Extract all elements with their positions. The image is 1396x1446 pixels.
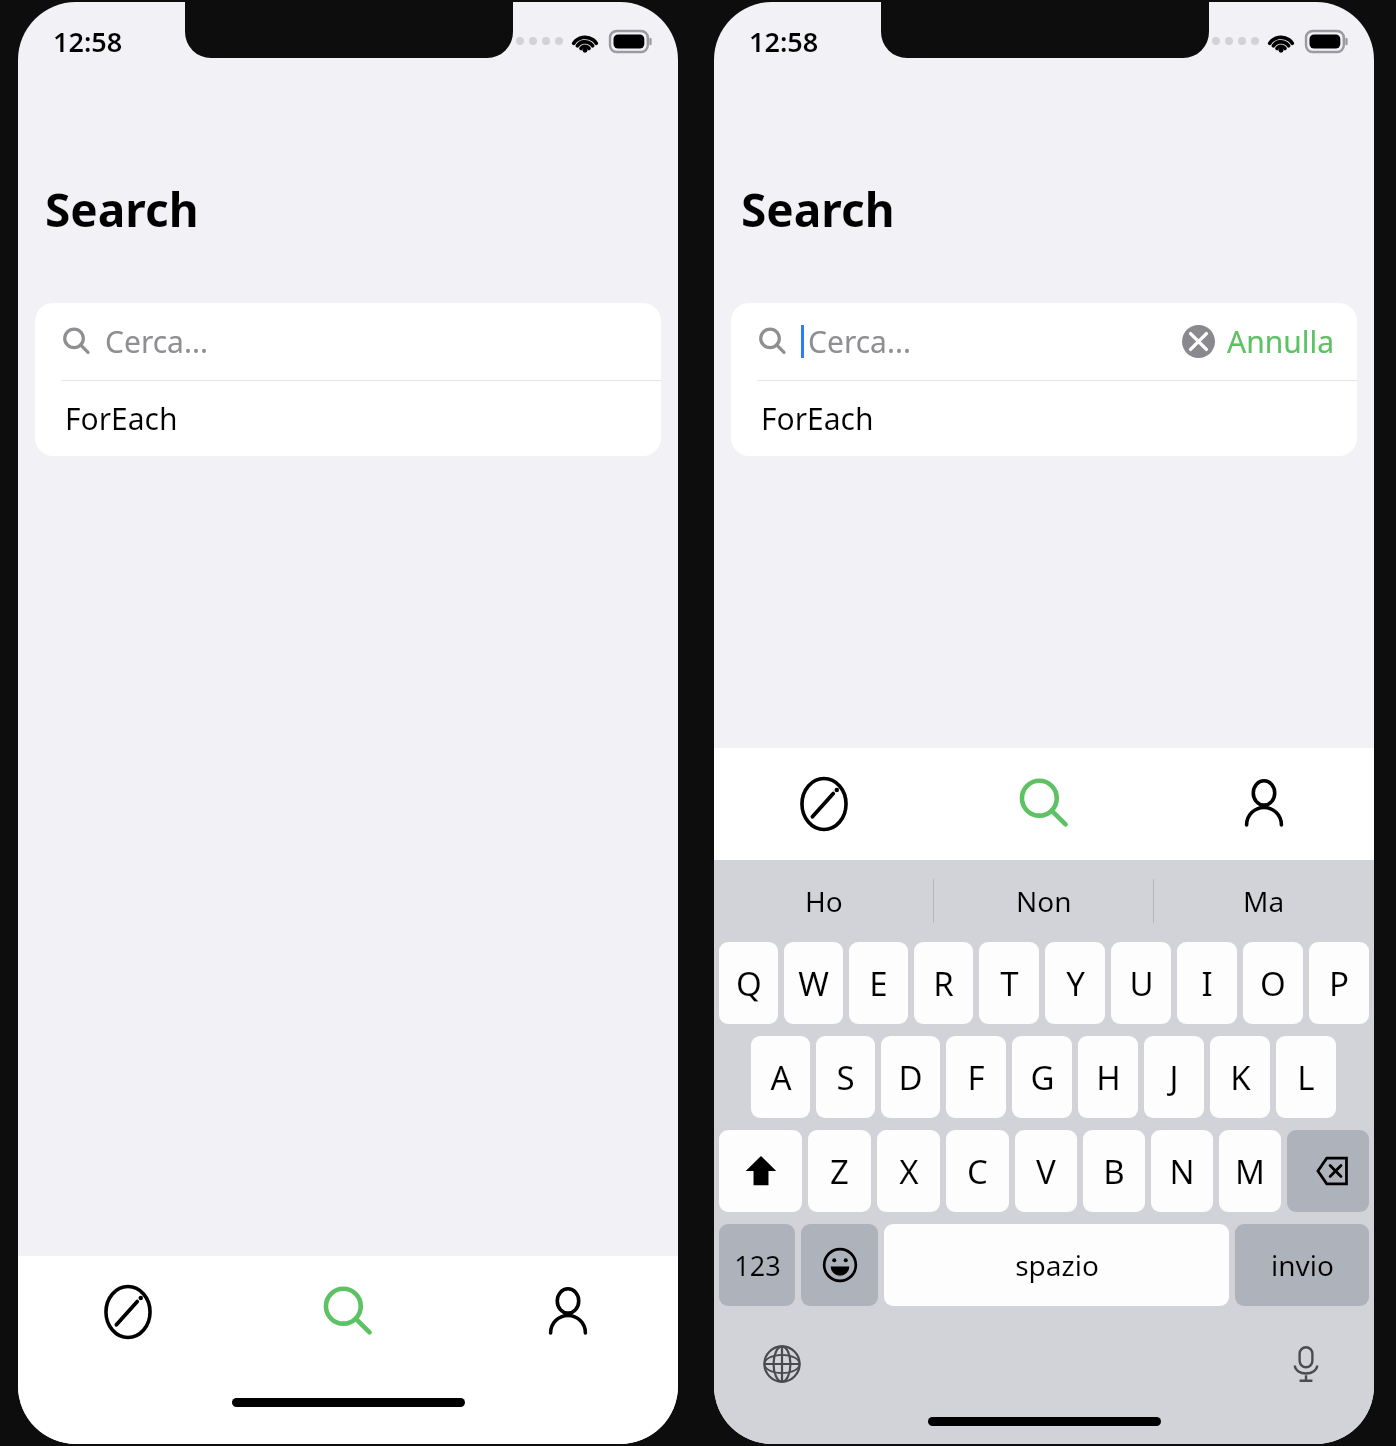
button[interactable]: I	[1177, 942, 1237, 1024]
button[interactable]: Q	[719, 942, 778, 1024]
staticText: B	[1103, 1149, 1125, 1194]
staticText: V	[1036, 1149, 1056, 1194]
staticText: W	[798, 961, 829, 1006]
button[interactable]: ForEach	[731, 381, 1357, 456]
staticText: G	[1030, 1055, 1055, 1100]
staticText: X	[899, 1149, 919, 1194]
button[interactable]: E	[849, 942, 908, 1024]
button[interactable]: Compose	[18, 1256, 238, 1368]
button[interactable]: Profile	[458, 1256, 678, 1368]
button[interactable]: Search	[238, 1256, 458, 1368]
staticText: Ho	[805, 882, 843, 920]
staticText: Z	[830, 1149, 849, 1194]
staticText: P	[1329, 961, 1349, 1006]
button[interactable]: Dictate	[1282, 1340, 1330, 1388]
button[interactable]: N	[1151, 1130, 1213, 1212]
button[interactable]: spazio	[884, 1224, 1229, 1306]
staticText: F	[967, 1055, 985, 1100]
button[interactable]: Compose	[714, 748, 934, 860]
button[interactable]: Ho	[714, 860, 934, 942]
staticText: Y	[1066, 961, 1085, 1006]
staticText: N	[1169, 1149, 1195, 1194]
staticText: I	[1201, 961, 1213, 1006]
staticText: C	[967, 1149, 988, 1194]
button[interactable]: Shift	[719, 1130, 802, 1212]
staticText: Search	[45, 178, 199, 241]
button[interactable]: 123	[719, 1224, 795, 1306]
button[interactable]: H	[1078, 1036, 1138, 1118]
button[interactable]: F	[946, 1036, 1006, 1118]
button[interactable]: Cerca...	[35, 303, 661, 380]
staticText: J	[1169, 1055, 1179, 1100]
staticText: ForEach	[65, 398, 178, 439]
button[interactable]: B	[1083, 1130, 1145, 1212]
staticText: Cerca...	[105, 321, 209, 362]
button[interactable]: S	[816, 1036, 875, 1118]
button[interactable]: P	[1309, 942, 1369, 1024]
button[interactable]: L	[1276, 1036, 1336, 1118]
button[interactable]: Backspace	[1287, 1130, 1369, 1212]
button[interactable]: Cerca...	[731, 303, 1357, 380]
button[interactable]: Change keyboard	[758, 1340, 806, 1388]
button[interactable]: V	[1015, 1130, 1077, 1212]
button[interactable]: Z	[808, 1130, 871, 1212]
button[interactable]: Non	[934, 860, 1154, 942]
staticText: A	[770, 1055, 792, 1100]
staticText: invio	[1271, 1246, 1334, 1284]
staticText: 12:58	[53, 23, 123, 60]
staticText: R	[933, 961, 954, 1006]
staticText: 12:58	[749, 23, 819, 60]
staticText: ForEach	[761, 398, 874, 439]
staticText: K	[1230, 1055, 1251, 1100]
button[interactable]: C	[946, 1130, 1009, 1212]
staticText: Ma	[1243, 882, 1285, 920]
button[interactable]: G	[1012, 1036, 1072, 1118]
button[interactable]: invio	[1235, 1224, 1369, 1306]
button[interactable]: T	[979, 942, 1039, 1024]
button[interactable]: ForEach	[35, 381, 661, 456]
staticText: T	[1000, 961, 1019, 1006]
button[interactable]: Annulla	[1227, 321, 1335, 362]
button[interactable]: X	[877, 1130, 940, 1212]
staticText: Cerca...	[808, 321, 912, 362]
staticText: O	[1260, 961, 1286, 1006]
button[interactable]: Search	[934, 748, 1154, 860]
staticText: M	[1235, 1149, 1265, 1194]
staticText: Non	[1016, 882, 1072, 920]
staticText: L	[1297, 1055, 1315, 1100]
button[interactable]: Clear text	[1182, 325, 1215, 358]
button[interactable]: Profile	[1154, 748, 1374, 860]
button[interactable]: U	[1111, 942, 1171, 1024]
staticText: S	[836, 1055, 855, 1100]
staticText: spazio	[1015, 1246, 1099, 1284]
button[interactable]: Emoji	[801, 1224, 878, 1306]
staticText: Search	[741, 178, 895, 241]
button[interactable]: K	[1210, 1036, 1270, 1118]
button[interactable]: Ma	[1154, 860, 1374, 942]
button[interactable]: O	[1243, 942, 1303, 1024]
staticText: 123	[734, 1247, 781, 1284]
button[interactable]: R	[914, 942, 973, 1024]
staticText: U	[1129, 961, 1154, 1006]
button[interactable]: W	[784, 942, 843, 1024]
staticText: D	[898, 1055, 923, 1100]
button[interactable]: M	[1219, 1130, 1281, 1212]
button[interactable]: D	[881, 1036, 940, 1118]
button[interactable]: J	[1144, 1036, 1204, 1118]
staticText: E	[869, 961, 888, 1006]
staticText: H	[1096, 1055, 1121, 1100]
button[interactable]: A	[751, 1036, 810, 1118]
staticText: Q	[736, 961, 762, 1006]
button[interactable]: Y	[1045, 942, 1105, 1024]
